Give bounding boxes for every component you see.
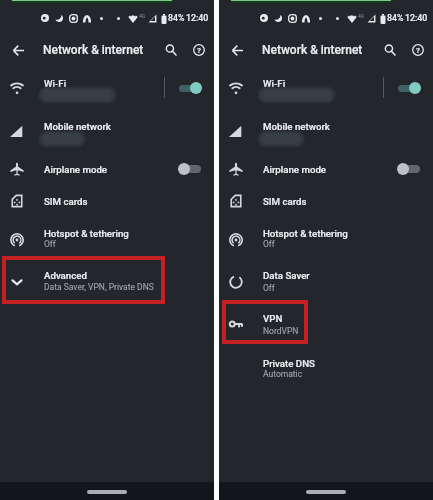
button[interactable]: Mobile network (0, 112, 214, 150)
staticText: VPN (263, 313, 283, 324)
button[interactable]: Back (6, 38, 30, 62)
staticText: 4G (358, 13, 365, 19)
staticText: 84% (168, 13, 185, 23)
button[interactable]: Search (159, 38, 183, 62)
button[interactable]: Back (225, 38, 249, 62)
button[interactable]: VPN (219, 305, 433, 343)
staticText: Off (263, 239, 275, 249)
button[interactable]: Airplane mode (0, 150, 214, 188)
staticText: Network & internet (262, 43, 363, 57)
staticText: 12:40 (186, 13, 209, 23)
button[interactable]: Help (187, 38, 211, 62)
button[interactable]: SIM cards (219, 182, 433, 220)
staticText: Data Saver (263, 270, 310, 281)
button[interactable]: Private DNS (219, 349, 433, 387)
staticText: Wi-Fi (44, 78, 67, 89)
staticText: 12:40 (405, 13, 428, 23)
button[interactable]: Data Saver (219, 263, 433, 301)
staticText: Hotspot & tethering (263, 228, 348, 239)
staticText: Airplane mode (44, 164, 108, 175)
button[interactable]: Airplane mode (219, 150, 433, 188)
staticText: Advanced (44, 270, 87, 281)
button[interactable]: Help (406, 38, 430, 62)
staticText: Mobile network (44, 121, 111, 132)
button[interactable]: Search (378, 38, 402, 62)
staticText: Mobile network (263, 121, 330, 132)
staticText: Wi-Fi (263, 78, 286, 89)
staticText: ? (197, 46, 201, 55)
staticText: SIM cards (263, 196, 307, 207)
button[interactable]: Wi-Fi (0, 69, 214, 107)
staticText: 4G (139, 13, 146, 19)
staticText: Automatic (263, 369, 303, 379)
staticText: Private DNS (263, 358, 315, 369)
button[interactable]: SIM cards (0, 182, 214, 220)
staticText: Off (44, 239, 56, 249)
staticText: Hotspot & tethering (44, 228, 129, 239)
button[interactable]: Hotspot & tethering (0, 221, 214, 259)
button[interactable]: Mobile network (219, 112, 433, 150)
button[interactable]: Advanced (0, 263, 214, 301)
staticText: ? (416, 46, 420, 55)
staticText: Network & internet (43, 43, 144, 57)
button[interactable]: Wi-Fi (219, 69, 433, 107)
staticText: Data Saver, VPN, Private DNS (44, 282, 154, 292)
staticText: Off (263, 283, 275, 293)
staticText: 84% (387, 13, 404, 23)
staticText: NordVPN (263, 326, 299, 336)
button[interactable]: Hotspot & tethering (219, 221, 433, 259)
staticText: SIM cards (44, 196, 88, 207)
staticText: Airplane mode (263, 164, 327, 175)
